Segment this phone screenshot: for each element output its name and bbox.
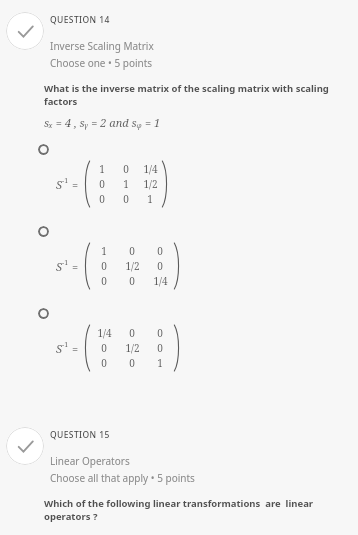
button[interactable]: S bbox=[0, 219, 358, 289]
staticText: QUESTION 14 bbox=[50, 14, 110, 26]
button[interactable] bbox=[38, 301, 62, 325]
staticText: = bbox=[72, 259, 79, 274]
button[interactable] bbox=[38, 219, 62, 243]
staticText: -1 bbox=[62, 176, 69, 186]
staticText: 0 bbox=[129, 356, 135, 370]
staticText: 1/2 bbox=[143, 177, 158, 191]
staticText: 1/4 bbox=[143, 162, 158, 176]
staticText: = bbox=[72, 177, 79, 192]
staticText: 0 bbox=[129, 274, 135, 288]
staticText: 0 bbox=[99, 192, 105, 206]
staticText: 1 bbox=[123, 177, 129, 191]
staticText: 0 bbox=[101, 274, 107, 288]
staticText: 1 bbox=[101, 244, 107, 258]
staticText: 0 bbox=[101, 259, 107, 273]
staticText: 0 bbox=[157, 244, 163, 258]
other: Answered bbox=[6, 12, 44, 50]
staticText: QUESTION 15 bbox=[50, 429, 110, 441]
staticText: What is the inverse matrix of the scalin… bbox=[44, 82, 344, 108]
staticText: 1 bbox=[157, 356, 163, 370]
staticText: 0 bbox=[123, 162, 129, 176]
button[interactable]: S bbox=[0, 137, 358, 207]
staticText: 0 bbox=[157, 259, 163, 273]
staticText: 0 bbox=[157, 326, 163, 340]
staticText: 1/2 bbox=[125, 341, 140, 355]
staticText: Linear Operators bbox=[50, 454, 130, 468]
staticText: 1/4 bbox=[153, 274, 168, 288]
staticText: 0 bbox=[129, 326, 135, 340]
staticText: S bbox=[56, 259, 62, 274]
staticText: 1 bbox=[99, 162, 105, 176]
button[interactable] bbox=[38, 137, 62, 161]
staticText: = bbox=[72, 341, 79, 356]
staticText: 1/2 bbox=[125, 259, 140, 273]
staticText: S bbox=[56, 341, 62, 356]
staticText: Choose all that apply • 5 points bbox=[50, 471, 195, 485]
staticText: Which of the following linear transforma… bbox=[44, 497, 346, 523]
staticText: 0 bbox=[157, 341, 163, 355]
button[interactable]: S bbox=[0, 301, 358, 371]
staticText: Inverse Scaling Matrix bbox=[50, 39, 154, 53]
staticText: 0 bbox=[129, 244, 135, 258]
staticText: sₓ = 4 , sᵧ = 2 and sᵩ = 1 bbox=[44, 115, 161, 130]
staticText: 0 bbox=[123, 192, 129, 206]
staticText: 0 bbox=[101, 356, 107, 370]
staticText: 1 bbox=[147, 192, 153, 206]
staticText: 0 bbox=[99, 177, 105, 191]
staticText: -1 bbox=[62, 340, 69, 350]
staticText: -1 bbox=[62, 258, 69, 268]
staticText: 0 bbox=[101, 341, 107, 355]
staticText: Choose one • 5 points bbox=[50, 56, 153, 70]
staticText: S bbox=[56, 177, 62, 192]
other: Answered bbox=[6, 427, 44, 465]
staticText: 1/4 bbox=[97, 326, 112, 340]
